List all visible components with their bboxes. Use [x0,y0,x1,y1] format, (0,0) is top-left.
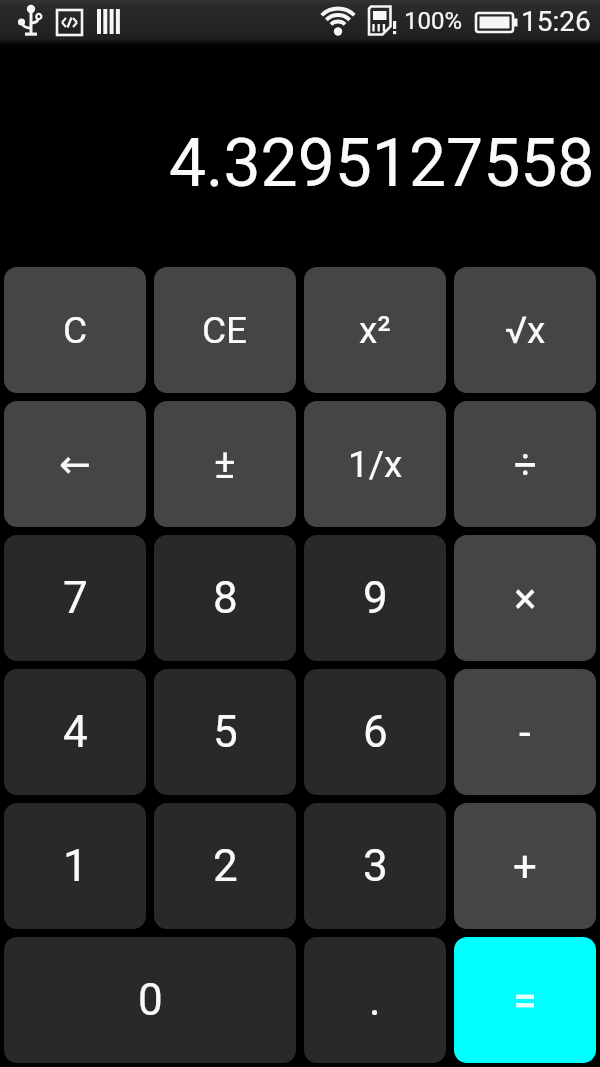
staticText: 9 [363,572,388,624]
button[interactable]: 4 [4,669,146,795]
button[interactable]: + [454,803,596,929]
staticText: 15:26 [521,5,591,38]
staticText: 8 [213,572,238,624]
staticText: ± [214,441,236,488]
staticText: 4.3295127558 [169,125,595,202]
button[interactable]: 2 [154,803,296,929]
button[interactable]: 1/x [304,401,446,527]
staticText: 3 [363,840,388,892]
button[interactable]: 9 [304,535,446,661]
button[interactable]: ± [154,401,296,527]
button[interactable]: . [304,937,446,1063]
staticText: 7 [63,572,88,624]
button[interactable]: 0 [4,937,296,1063]
button[interactable]: 8 [154,535,296,661]
button[interactable]: × [454,535,596,661]
button[interactable]: 7 [4,535,146,661]
staticText: 1 [63,840,88,892]
button[interactable]: 6 [304,669,446,795]
button[interactable]: 5 [154,669,296,795]
staticText: × [514,574,537,623]
button[interactable]: C [4,267,146,393]
staticText: ← [59,442,91,486]
staticText: 6 [363,706,388,758]
staticText: ÷ [514,441,537,488]
button[interactable]: - [454,669,596,795]
staticText: 0 [138,974,163,1026]
staticText: 1/x [348,443,403,486]
button[interactable]: 3 [304,803,446,929]
staticText: . [369,974,381,1026]
staticText: √x [505,309,546,352]
staticText: x² [359,309,391,352]
button[interactable] [454,937,596,1063]
staticText: CE [202,309,248,352]
staticText: 5 [213,706,238,758]
staticText: C [63,309,88,352]
staticText: - [519,708,531,757]
button[interactable]: ← [4,401,146,527]
button[interactable]: x² [304,267,446,393]
staticText: + [513,842,537,891]
staticText: 4 [63,706,88,758]
button[interactable]: CE [154,267,296,393]
button[interactable]: √x [454,267,596,393]
staticText: 100% [404,7,463,35]
staticText: 2 [213,840,238,892]
button[interactable]: 1 [4,803,146,929]
button[interactable]: ÷ [454,401,596,527]
